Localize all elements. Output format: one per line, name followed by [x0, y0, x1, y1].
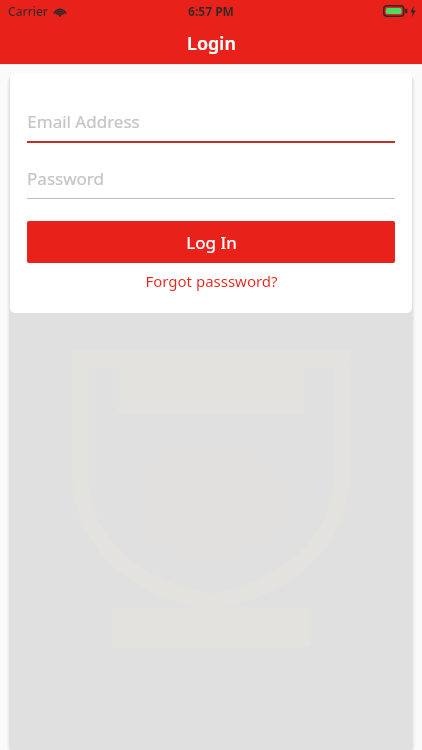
button[interactable]: Email Address [27, 107, 395, 143]
staticText: 6:57 PM [188, 3, 234, 19]
staticText: Forgot passsword? [145, 271, 278, 291]
staticText: Email Address [27, 110, 140, 133]
staticText: Carrier [8, 3, 48, 19]
other: Wi-Fi signal [53, 6, 67, 17]
button[interactable]: Forgot passsword? [10, 263, 412, 299]
button[interactable]: Password [27, 164, 395, 199]
other: Battery charging [383, 5, 408, 17]
staticText: Password [27, 167, 104, 190]
staticText: Log In [186, 231, 237, 254]
staticText: Login [187, 31, 236, 56]
button[interactable]: Log In [27, 221, 395, 263]
